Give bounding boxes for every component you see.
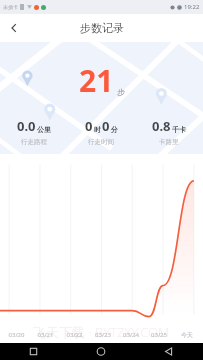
staticText: 卡路里 [159, 138, 179, 146]
staticText: 步数记录 [80, 21, 124, 35]
button[interactable]: Back [135, 343, 203, 360]
staticText: 03/20 [2, 331, 31, 339]
staticText: 0 [102, 117, 110, 135]
staticText: 21 [79, 60, 114, 101]
staticText: 步 [117, 87, 125, 97]
staticText: 飞天下载 · BYTZXY.COM [33, 323, 170, 341]
staticText: 公里 [37, 125, 51, 134]
staticText: 03/25 [145, 331, 173, 339]
staticText: 03/23 [89, 331, 117, 339]
staticText: 0.0 [17, 117, 36, 135]
staticText: 19:22 [184, 3, 200, 11]
staticText: 行走路程 [21, 138, 47, 146]
staticText: 分 [111, 125, 118, 134]
staticText: 03/22 [60, 331, 89, 339]
staticText: 时 [94, 125, 101, 134]
staticText: 03/21 [31, 331, 60, 339]
staticText: 03/24 [117, 331, 145, 339]
staticText: 行走时间 [88, 138, 114, 146]
staticText: 今天 [173, 331, 201, 339]
staticText: 千卡 [172, 125, 186, 134]
staticText: 0.8 [152, 117, 171, 135]
button[interactable]: Back [0, 14, 28, 42]
button[interactable]: Home [67, 343, 135, 360]
staticText: 0 [85, 117, 93, 135]
staticText: 未插卡 [3, 4, 18, 10]
button[interactable]: Recents [0, 343, 67, 360]
